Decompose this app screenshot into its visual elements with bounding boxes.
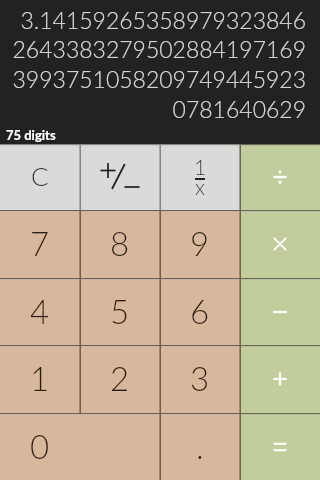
- button[interactable]: C: [0, 144, 80, 210]
- staticText: 1: [194, 154, 207, 176]
- button[interactable]: 4: [0, 278, 80, 345]
- staticText: 3.14159265358979323846264338327950288419…: [10, 6, 306, 123]
- staticText: 1: [30, 358, 50, 398]
- other: Minus: [267, 299, 293, 325]
- button[interactable]: Multiply: [240, 210, 320, 278]
- button[interactable]: Divide: [240, 144, 320, 210]
- staticText: 7: [30, 223, 50, 263]
- staticText: .: [196, 426, 204, 466]
- button[interactable]: Plus or minus: [80, 144, 160, 210]
- button[interactable]: 0: [0, 413, 160, 480]
- other: Equals: [267, 434, 293, 460]
- button[interactable]: 9: [160, 210, 240, 278]
- other: Reciprocal: [180, 155, 220, 199]
- button[interactable]: Minus: [240, 278, 320, 345]
- button[interactable]: 3: [160, 345, 240, 413]
- staticText: 3: [190, 358, 210, 398]
- button[interactable]: 2: [80, 345, 160, 413]
- button[interactable]: Reciprocal: [160, 144, 240, 210]
- other: Multiply: [267, 231, 293, 257]
- staticText: 0: [30, 426, 50, 466]
- other: Plus: [267, 366, 293, 392]
- other: Divide: [267, 164, 293, 190]
- button[interactable]: 5: [80, 278, 160, 345]
- staticText: 2: [110, 358, 130, 398]
- staticText: x: [195, 174, 205, 196]
- staticText: 4: [30, 291, 50, 331]
- button[interactable]: 6: [160, 278, 240, 345]
- staticText: 8: [110, 223, 130, 263]
- staticText: 5: [110, 291, 130, 331]
- button[interactable]: 7: [0, 210, 80, 278]
- staticText: C: [31, 160, 49, 191]
- staticText: 9: [190, 223, 210, 263]
- staticText: 75 digits: [6, 127, 56, 143]
- button[interactable]: Plus: [240, 345, 320, 413]
- button[interactable]: Equals: [240, 413, 320, 480]
- other: Plus or minus: [100, 163, 140, 191]
- button[interactable]: 8: [80, 210, 160, 278]
- staticText: 6: [190, 291, 210, 331]
- button[interactable]: 1: [0, 345, 80, 413]
- button[interactable]: .: [160, 413, 240, 480]
